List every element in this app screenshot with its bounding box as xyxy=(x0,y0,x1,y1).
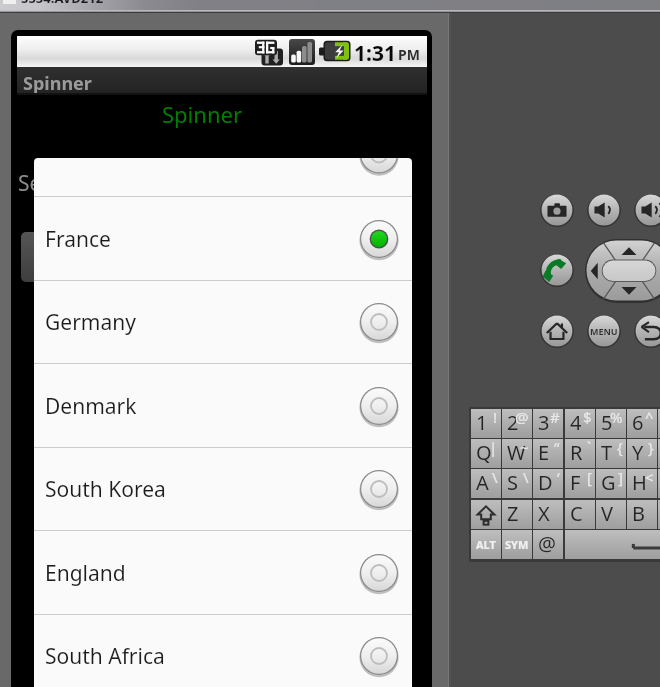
button[interactable]: 3 xyxy=(533,409,563,438)
staticText: @ xyxy=(538,530,556,557)
button[interactable]: South Africa xyxy=(34,614,412,687)
button[interactable]: A xyxy=(471,469,501,498)
staticText: 2 xyxy=(507,409,519,436)
staticText: # xyxy=(550,407,560,427)
staticText: ~ xyxy=(520,437,529,457)
button[interactable]: Back xyxy=(634,314,660,348)
button[interactable]: ALT xyxy=(471,530,501,559)
button[interactable]: 2 xyxy=(502,409,532,438)
button[interactable]: F xyxy=(565,469,595,498)
staticText: 6 xyxy=(632,409,644,436)
button[interactable]: B xyxy=(627,500,657,529)
staticText: X xyxy=(538,500,550,527)
staticText: D xyxy=(538,469,553,496)
button[interactable]: Volume up xyxy=(634,193,660,227)
staticText: G xyxy=(601,469,616,496)
staticText: Y xyxy=(632,439,644,466)
staticText: C xyxy=(570,500,583,527)
staticText: South Africa xyxy=(45,642,165,671)
button[interactable]: 4 xyxy=(565,409,595,438)
staticText: [ xyxy=(587,467,592,487)
button[interactable] xyxy=(565,530,660,559)
staticText: PM xyxy=(398,45,420,64)
staticText: @ xyxy=(515,407,529,427)
staticText: $ xyxy=(583,407,592,427)
button[interactable]: @ xyxy=(533,530,563,559)
staticText: T xyxy=(601,439,613,466)
button[interactable]: W xyxy=(502,439,532,468)
staticText: France xyxy=(45,225,111,254)
button[interactable]: South Korea xyxy=(34,447,412,531)
button[interactable]: 5 xyxy=(596,409,626,438)
staticText: England xyxy=(45,559,126,588)
staticText: R xyxy=(570,439,583,466)
button[interactable]: Directional pad xyxy=(585,239,660,303)
button[interactable]: SYM xyxy=(502,530,532,559)
staticText: 5554:AVD212 xyxy=(21,0,104,7)
staticText: F xyxy=(570,469,581,496)
staticText: | xyxy=(489,437,498,457)
staticText: W xyxy=(507,439,526,466)
staticText: B xyxy=(632,500,645,527)
button[interactable]: G xyxy=(596,469,626,498)
staticText: Select Country xyxy=(18,169,161,198)
staticText: South Korea xyxy=(45,475,166,504)
staticText: Denmark xyxy=(45,392,137,421)
button[interactable]: H xyxy=(627,469,657,498)
button[interactable]: Menu xyxy=(587,314,621,348)
staticText: % xyxy=(610,407,623,427)
staticText: H xyxy=(632,469,647,496)
staticText: ] xyxy=(618,467,623,487)
staticText: Spinner xyxy=(162,99,242,129)
staticText: “ xyxy=(554,437,560,457)
staticText: V xyxy=(601,500,613,527)
staticText: Germany xyxy=(45,308,136,337)
button[interactable]: R xyxy=(565,439,595,468)
staticText: 4 xyxy=(570,409,582,436)
button[interactable]: Home xyxy=(540,314,574,348)
staticText: 1:31 xyxy=(354,39,396,68)
button[interactable]: T xyxy=(596,439,626,468)
button[interactable]: Denmark xyxy=(34,364,412,448)
button[interactable] xyxy=(21,232,411,282)
button[interactable]: 1 xyxy=(471,409,501,438)
staticText: ALT xyxy=(476,537,496,552)
staticText: SYM xyxy=(505,537,529,552)
button[interactable]: France xyxy=(34,197,412,281)
staticText: A xyxy=(476,469,489,496)
button[interactable]: Volume down xyxy=(587,193,621,227)
staticText: 3 xyxy=(538,409,550,436)
staticText: Z xyxy=(507,500,519,527)
staticText: ` xyxy=(587,437,592,457)
staticText: { xyxy=(617,437,623,457)
button[interactable]: D xyxy=(533,469,563,498)
button[interactable]: C xyxy=(565,500,595,529)
button[interactable]: Germany xyxy=(34,280,412,364)
staticText: Spinner xyxy=(23,71,92,96)
button[interactable]: E xyxy=(533,439,563,468)
button[interactable]: U xyxy=(658,439,660,468)
button[interactable]: X xyxy=(533,500,563,529)
staticText: \ xyxy=(523,467,529,487)
button[interactable]: Z xyxy=(502,500,532,529)
button[interactable] xyxy=(471,500,501,529)
staticText: < xyxy=(645,467,654,487)
staticText: E xyxy=(538,439,550,466)
button[interactable]: England xyxy=(34,531,412,615)
button[interactable]: Q xyxy=(471,439,501,468)
button[interactable]: 7 xyxy=(658,409,660,438)
staticText: ^ xyxy=(645,407,654,427)
staticText: ‘ xyxy=(557,467,560,487)
button[interactable]: Call xyxy=(540,253,574,287)
button[interactable]: N xyxy=(658,500,660,529)
button[interactable]: 6 xyxy=(627,409,657,438)
button[interactable]: V xyxy=(596,500,626,529)
staticText: } xyxy=(648,437,654,457)
staticText: 5 xyxy=(601,409,613,436)
button[interactable]: J xyxy=(658,469,660,498)
button[interactable]: Camera xyxy=(540,193,574,227)
button[interactable]: Y xyxy=(627,439,657,468)
staticText: ! xyxy=(493,407,498,427)
button[interactable]: S xyxy=(502,469,532,498)
staticText: MENU xyxy=(590,325,618,337)
